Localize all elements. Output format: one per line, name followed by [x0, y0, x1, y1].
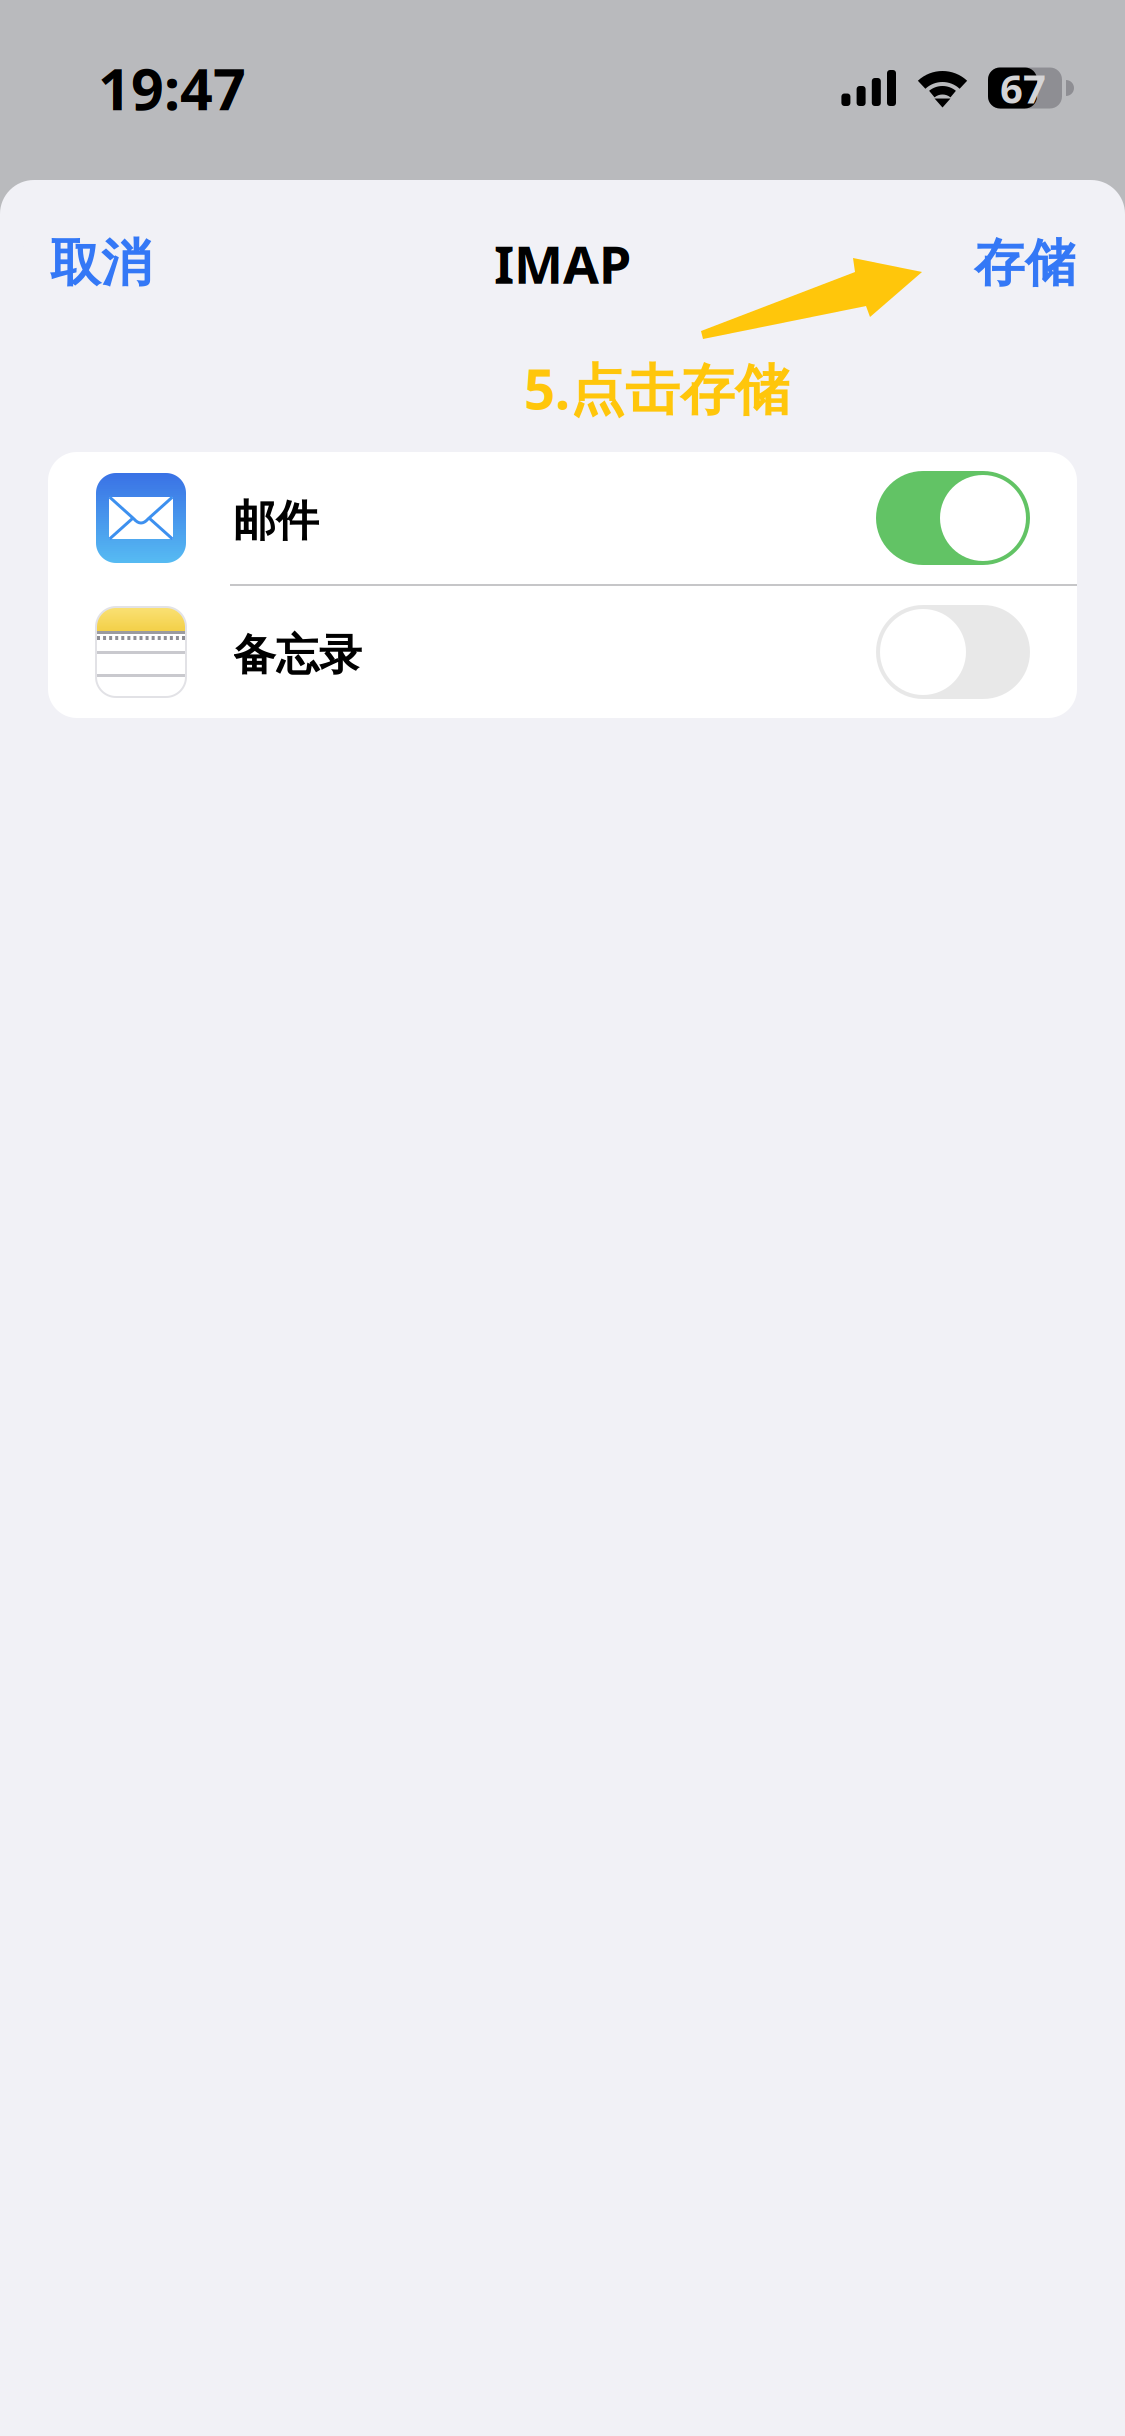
staticText: 67	[1000, 61, 1046, 114]
button[interactable]: 邮件	[48, 452, 1077, 584]
staticText: IMAP	[494, 229, 631, 298]
staticText: 备忘录	[233, 629, 362, 681]
staticText: 19:47	[98, 50, 246, 126]
staticText: 邮件	[233, 495, 319, 547]
staticText: 5.点击存储	[524, 352, 790, 425]
staticText: 存储	[974, 232, 1076, 295]
button[interactable]: 取消	[0, 218, 176, 309]
button[interactable]: 备忘录	[48, 586, 1077, 718]
button[interactable]: 存储	[950, 218, 1125, 309]
staticText: 取消	[50, 232, 152, 295]
